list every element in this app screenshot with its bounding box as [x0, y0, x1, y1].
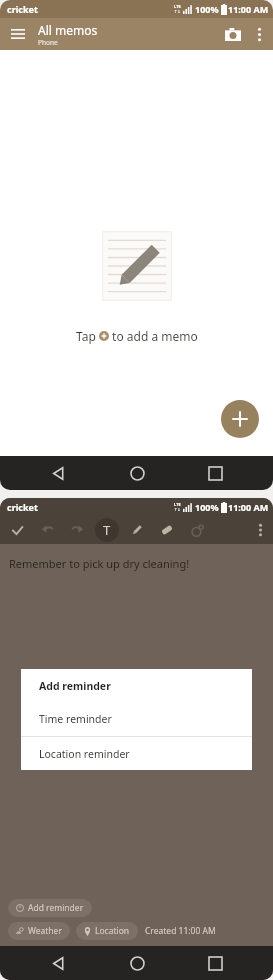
staticText: LTE — [174, 4, 181, 9]
button[interactable]: Time reminder — [21, 702, 252, 736]
staticText: 100% — [195, 501, 219, 513]
staticText: 11:00 AM — [228, 3, 269, 15]
button[interactable]: Menu — [5, 21, 31, 47]
staticText: Phone — [38, 38, 58, 47]
staticText: LTE — [174, 502, 181, 507]
button[interactable]: Attach — [182, 516, 212, 544]
staticText: Location reminder — [39, 747, 130, 761]
button[interactable]: Pen — [122, 516, 152, 544]
staticText: ↑↓ — [174, 507, 181, 512]
button[interactable]: Undo — [32, 516, 62, 544]
button[interactable]: Add reminder — [21, 669, 252, 702]
button[interactable]: Location reminder — [21, 737, 252, 770]
staticText: 11:00 AM — [228, 501, 269, 513]
button[interactable]: Add memo — [221, 400, 259, 438]
button[interactable]: Back — [38, 946, 78, 980]
button[interactable]: Recents — [195, 946, 235, 980]
staticText: Add reminder — [39, 679, 111, 693]
staticText: Time reminder — [39, 712, 112, 726]
button[interactable]: Camera — [219, 20, 247, 48]
staticText: cricket — [7, 501, 38, 513]
button[interactable]: Eraser — [152, 516, 182, 544]
staticText: Weather — [28, 925, 62, 937]
staticText: to add a memo — [109, 328, 198, 344]
button[interactable]: Location — [76, 922, 138, 940]
staticText: T — [103, 521, 111, 539]
staticText: All memos — [38, 22, 98, 38]
button[interactable]: Home — [117, 456, 157, 490]
button[interactable]: Back — [38, 456, 78, 490]
button[interactable]: Done — [2, 516, 32, 544]
button[interactable]: More options — [247, 22, 271, 46]
button[interactable]: Home — [117, 946, 157, 980]
staticText: cricket — [7, 3, 38, 15]
button[interactable]: Redo — [62, 516, 92, 544]
staticText: Location — [95, 925, 130, 937]
staticText: Created 11:00 AM — [145, 925, 216, 937]
button[interactable]: More options — [249, 519, 271, 541]
staticText: 100% — [195, 3, 219, 15]
button[interactable]: Text — [92, 516, 122, 544]
staticText: Add reminder — [28, 902, 84, 914]
button[interactable]: Add reminder — [8, 899, 92, 917]
staticText: ↑↓ — [174, 9, 181, 14]
staticText: Remember to pick up dry cleaning! — [9, 556, 190, 571]
button[interactable]: Weather — [8, 922, 70, 940]
staticText: Tap — [76, 328, 99, 344]
button[interactable]: Recents — [195, 456, 235, 490]
